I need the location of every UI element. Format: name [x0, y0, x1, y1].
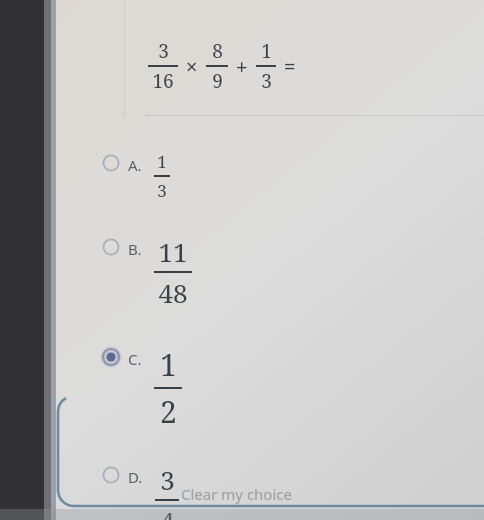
staticText: ×	[186, 53, 198, 80]
staticText: +	[236, 53, 248, 80]
staticText: 3	[157, 179, 167, 202]
staticText: 4	[160, 503, 175, 520]
staticText: 48	[158, 275, 188, 310]
staticText: A.	[128, 155, 142, 175]
staticText: =	[284, 53, 296, 80]
staticText: 1	[261, 38, 272, 64]
staticText: 1	[157, 150, 167, 173]
button[interactable]: Select option A	[0, 150, 484, 202]
staticText: 3	[261, 68, 272, 94]
staticText: B.	[128, 239, 142, 259]
staticText: Clear my choice	[181, 484, 292, 504]
staticText: 9	[212, 68, 223, 94]
staticText: 3	[158, 38, 169, 64]
staticText: 1	[160, 344, 177, 385]
staticText: D.	[128, 467, 143, 487]
staticText: C.	[128, 349, 142, 369]
staticText: 2	[160, 391, 177, 432]
button[interactable]: Clear my choice	[175, 482, 298, 506]
button[interactable]: Select option C	[100, 346, 122, 368]
button[interactable]: Select option C	[0, 310, 484, 432]
button[interactable]: Select option D	[0, 432, 484, 520]
staticText: 16	[152, 68, 174, 94]
button[interactable]: Select option A	[100, 152, 122, 174]
staticText: 8	[212, 38, 223, 64]
staticText: 11	[158, 234, 188, 269]
button[interactable]: Select option D	[100, 464, 122, 486]
staticText: 3	[160, 462, 175, 497]
button[interactable]: Select option B	[100, 236, 122, 258]
button[interactable]: Select option B	[0, 202, 484, 310]
